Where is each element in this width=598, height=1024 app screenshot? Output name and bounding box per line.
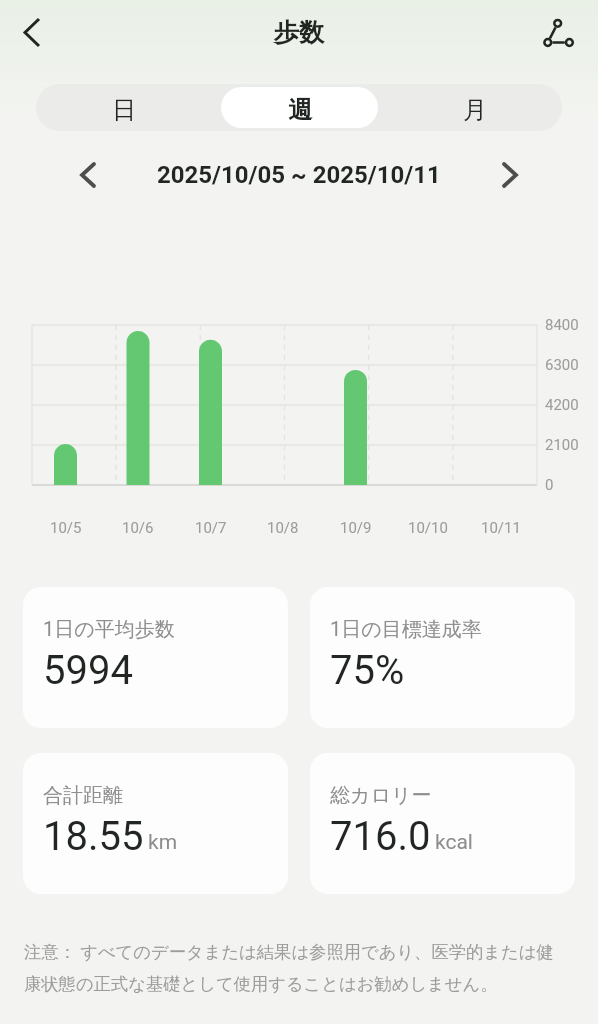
staticText: 8400	[545, 316, 579, 334]
staticText: km	[148, 830, 178, 855]
staticText: 合計距離	[43, 783, 123, 808]
staticText: 2100	[545, 436, 579, 454]
staticText: 1日の平均歩数	[43, 617, 175, 642]
staticText: 716.0	[330, 813, 431, 860]
staticText: 75%	[330, 647, 405, 694]
staticText: 18.55	[43, 813, 144, 860]
button[interactable]: 週	[212, 84, 387, 131]
staticText: 10/7	[195, 519, 227, 537]
staticText: 6300	[545, 356, 579, 374]
staticText: 総カロリー	[330, 783, 432, 808]
button[interactable]	[494, 159, 526, 191]
button[interactable]: 月	[387, 84, 562, 131]
staticText: 10/5	[50, 519, 82, 537]
staticText: 日	[112, 95, 136, 125]
staticText: 週	[288, 95, 312, 125]
staticText: 10/9	[340, 519, 372, 537]
staticText: 月	[463, 95, 487, 125]
staticText: 10/10	[408, 519, 448, 537]
staticText: 1日の目標達成率	[330, 617, 482, 642]
staticText: 0	[545, 476, 554, 494]
staticText: 10/8	[267, 519, 299, 537]
staticText: 4200	[545, 396, 579, 414]
staticText: 歩数	[274, 17, 324, 48]
staticText: 注意： すべてのデータまたは結果は参照用であり、医学的または健 康状態の正式な基…	[24, 941, 554, 995]
staticText: 5994	[43, 647, 133, 694]
button[interactable]	[72, 159, 104, 191]
button[interactable]	[538, 12, 578, 52]
button[interactable]	[14, 14, 50, 50]
staticText: 10/6	[122, 519, 154, 537]
button[interactable]: 日	[36, 84, 212, 131]
staticText: kcal	[435, 830, 473, 855]
staticText: 10/11	[481, 519, 521, 537]
staticText: 2025/10/05 ~ 2025/10/11	[157, 161, 441, 189]
